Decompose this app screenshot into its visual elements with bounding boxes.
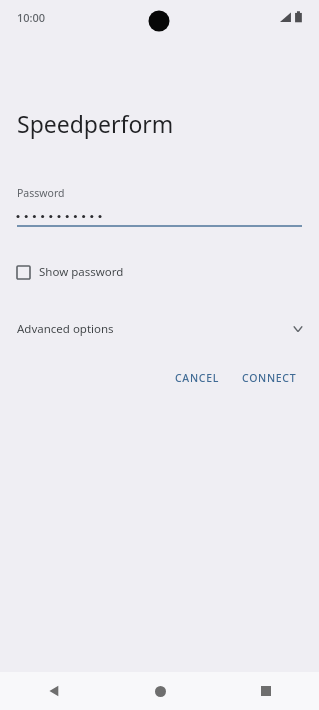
staticText: Show password [39,264,124,280]
staticText: 10:00 [17,10,46,25]
button[interactable]: CONNECT [234,365,305,391]
staticText: CONNECT [242,371,297,385]
button[interactable] [0,209,319,232]
staticText: Advanced options [17,321,114,337]
button[interactable]: Show password [0,258,319,286]
other: Expand advanced options [291,322,305,336]
button[interactable]: Back [0,672,107,710]
button[interactable]: Home [107,672,213,710]
staticText: CANCEL [175,371,220,385]
staticText: Password [17,186,65,200]
button[interactable]: Recent apps [213,672,319,710]
staticText: Speedperform [17,108,174,139]
button[interactable]: Advanced options [0,315,319,343]
button[interactable]: CANCEL [167,365,228,391]
